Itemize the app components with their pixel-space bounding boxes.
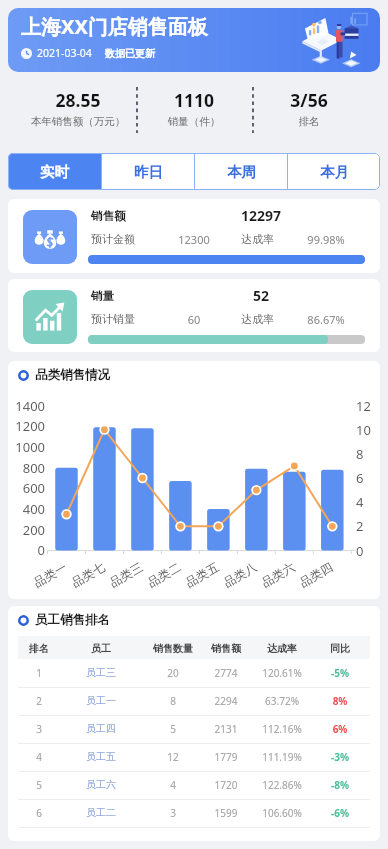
staticText: 10 <box>356 421 380 439</box>
staticText: 28.55 <box>18 88 138 112</box>
staticText: 2021-03-04 <box>37 46 92 60</box>
staticText: 600 <box>8 479 45 497</box>
button[interactable]: 2 <box>8 687 380 715</box>
staticText: 品类二 <box>145 559 183 590</box>
staticText: 6 <box>8 806 74 820</box>
staticText: 52 <box>236 286 286 305</box>
staticText: 3 <box>138 806 208 820</box>
staticText: 0 <box>8 541 45 559</box>
button[interactable]: 上海XX门店销售面板 <box>8 8 380 72</box>
staticText: 8 <box>356 445 380 463</box>
staticText: 品类七 <box>69 559 107 590</box>
staticText: 销售额 <box>191 642 261 655</box>
staticText: 122.86% <box>247 778 317 792</box>
button[interactable]: 3 <box>8 715 380 743</box>
staticText: 4 <box>8 750 74 764</box>
button[interactable]: 本周 <box>195 153 287 190</box>
staticText: 1 <box>8 666 74 680</box>
staticText: 排名 <box>8 642 74 655</box>
staticText: 5 <box>138 722 208 736</box>
button[interactable]: 本月 <box>288 153 380 190</box>
staticText: -8% <box>305 778 375 792</box>
staticText: 4 <box>138 778 208 792</box>
staticText: 1400 <box>8 397 45 415</box>
staticText: 8% <box>305 694 375 708</box>
staticText: 品类一 <box>31 559 69 590</box>
staticText: 昨日 <box>134 163 163 181</box>
staticText: 达成率 <box>247 642 317 655</box>
staticText: 达成率 <box>241 312 274 326</box>
staticText: 员工销售排名 <box>35 612 110 628</box>
staticText: 12297 <box>236 206 286 225</box>
staticText: 品类四 <box>297 559 335 590</box>
staticText: 品类销售情况 <box>35 367 110 383</box>
staticText: 达成率 <box>241 232 274 246</box>
staticText: 6% <box>305 722 375 736</box>
staticText: 排名 <box>249 115 369 128</box>
staticText: 120.61% <box>247 666 317 680</box>
staticText: 1599 <box>191 806 261 820</box>
staticText: -3% <box>305 750 375 764</box>
staticText: 60 <box>172 312 216 327</box>
button[interactable]: 实时 <box>8 153 101 190</box>
staticText: 12300 <box>172 232 216 247</box>
staticText: 预计金额 <box>91 232 135 246</box>
staticText: 2 <box>356 517 380 535</box>
button[interactable]: 5 <box>8 771 380 799</box>
staticText: 3 <box>8 722 74 736</box>
staticText: -5% <box>305 666 375 680</box>
staticText: 12 <box>138 750 208 764</box>
staticText: -6% <box>305 806 375 820</box>
button[interactable]: 昨日 <box>102 153 194 190</box>
staticText: 员工二 <box>66 806 136 819</box>
staticText: 1200 <box>8 417 45 435</box>
staticText: 106.60% <box>247 806 317 820</box>
staticText: 本周 <box>227 163 256 181</box>
staticText: 1720 <box>191 778 261 792</box>
staticText: 实时 <box>40 163 69 181</box>
staticText: 12 <box>356 397 380 415</box>
staticText: 8 <box>138 694 208 708</box>
staticText: 数据已更新 <box>105 47 155 60</box>
staticText: 99.98% <box>298 232 354 247</box>
button[interactable]: 销量 <box>8 279 380 352</box>
staticText: 品类三 <box>107 559 145 590</box>
staticText: 800 <box>8 459 45 477</box>
staticText: 品类五 <box>183 559 221 590</box>
button[interactable]: 销售额 <box>8 199 380 273</box>
staticText: 销量 <box>91 289 114 303</box>
staticText: 销量（件） <box>134 115 254 128</box>
staticText: 销售数量 <box>138 642 208 655</box>
staticText: 0 <box>356 542 380 560</box>
staticText: 销售额 <box>91 209 126 223</box>
staticText: 6 <box>356 469 380 487</box>
staticText: 400 <box>8 500 45 518</box>
staticText: 63.72% <box>247 694 317 708</box>
staticText: 预计销量 <box>91 312 135 326</box>
staticText: 员工一 <box>66 694 136 707</box>
button[interactable]: 1 <box>8 659 380 687</box>
staticText: 员工五 <box>66 750 136 763</box>
staticText: 2131 <box>191 722 261 736</box>
staticText: 2294 <box>191 694 261 708</box>
staticText: 1000 <box>8 438 45 456</box>
staticText: 5 <box>8 778 74 792</box>
button[interactable]: 6 <box>8 799 380 827</box>
button[interactable]: 4 <box>8 743 380 771</box>
staticText: 2 <box>8 694 74 708</box>
staticText: 200 <box>8 521 45 539</box>
staticText: 1779 <box>191 750 261 764</box>
staticText: 本月 <box>320 163 349 181</box>
staticText: 111.19% <box>247 750 317 764</box>
staticText: 同比 <box>305 642 375 655</box>
staticText: 员工 <box>66 642 136 655</box>
staticText: 2774 <box>191 666 261 680</box>
staticText: 3/56 <box>249 88 369 112</box>
staticText: 1110 <box>134 88 254 112</box>
staticText: 品类六 <box>259 559 297 590</box>
staticText: 20 <box>138 666 208 680</box>
staticText: 86.67% <box>298 312 354 327</box>
staticText: 上海XX门店销售面板 <box>21 13 208 40</box>
staticText: 112.16% <box>247 722 317 736</box>
staticText: 员工四 <box>66 722 136 735</box>
